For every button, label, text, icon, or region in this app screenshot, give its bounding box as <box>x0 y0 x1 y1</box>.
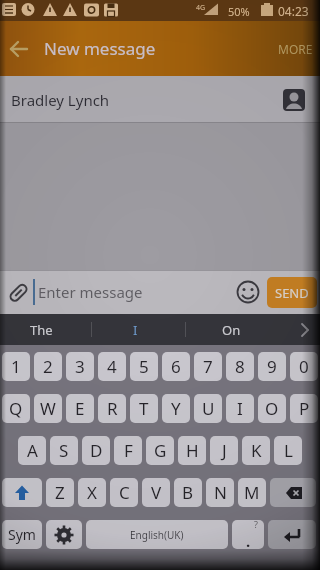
button[interactable]: I <box>133 321 138 339</box>
button[interactable]: U <box>194 394 222 423</box>
staticText: 8 <box>235 355 245 378</box>
button[interactable]: . <box>232 520 264 549</box>
staticText: X <box>87 481 97 504</box>
staticText: ? <box>254 520 258 530</box>
staticText: Bradley Lynch <box>11 90 110 110</box>
staticText: 50% <box>228 4 250 19</box>
button[interactable]: R <box>98 394 126 423</box>
staticText: P <box>299 397 310 420</box>
staticText: I <box>133 321 138 339</box>
button[interactable]: 5 <box>130 352 158 381</box>
button[interactable]: S <box>50 436 78 465</box>
button[interactable] <box>5 280 31 306</box>
staticText: 4 <box>107 355 117 378</box>
button[interactable]: Z <box>46 478 74 507</box>
staticText: F <box>124 439 133 462</box>
staticText: 04:23 <box>278 3 309 19</box>
button[interactable]: On <box>222 321 241 339</box>
button[interactable]: 7 <box>194 352 222 381</box>
staticText: L <box>284 439 293 462</box>
staticText: S <box>59 439 69 462</box>
button[interactable] <box>270 478 316 507</box>
button[interactable]: D <box>82 436 110 465</box>
staticText: I <box>237 397 243 420</box>
staticText: A <box>27 439 38 462</box>
button[interactable]: Q <box>2 394 30 423</box>
staticText: 9 <box>267 355 277 378</box>
button[interactable]: L <box>274 436 302 465</box>
button[interactable] <box>236 280 260 304</box>
staticText: B <box>182 481 194 504</box>
button[interactable]: F <box>114 436 142 465</box>
staticText: K <box>251 439 262 462</box>
staticText: D <box>90 439 103 462</box>
staticText: N <box>214 481 227 504</box>
button[interactable]: 9 <box>258 352 286 381</box>
staticText: M <box>244 481 260 504</box>
staticText: E <box>75 397 85 420</box>
staticText: W <box>40 397 56 420</box>
button[interactable]: C <box>110 478 138 507</box>
staticText: J <box>222 439 227 462</box>
button[interactable]: X <box>78 478 106 507</box>
button[interactable] <box>46 520 82 549</box>
button[interactable]: P <box>290 394 318 423</box>
button[interactable] <box>2 478 42 507</box>
staticText: R <box>107 397 118 420</box>
button[interactable]: Y <box>162 394 190 423</box>
staticText: MORE <box>278 41 313 57</box>
button[interactable]: Sym <box>2 520 42 549</box>
staticText: New message <box>44 37 156 60</box>
staticText: Y <box>171 397 181 420</box>
button[interactable]: 6 <box>162 352 190 381</box>
button[interactable]: Bradley Lynch <box>0 76 320 123</box>
staticText: The <box>30 321 53 339</box>
button[interactable]: J <box>210 436 238 465</box>
button[interactable]: H <box>178 436 206 465</box>
staticText: C <box>119 481 130 504</box>
button[interactable]: 1 <box>2 352 30 381</box>
button[interactable]: I <box>226 394 254 423</box>
button[interactable]: 3 <box>66 352 94 381</box>
staticText: 2 <box>43 355 53 378</box>
button[interactable]: K <box>242 436 270 465</box>
button[interactable]: 4 <box>98 352 126 381</box>
button[interactable]: N <box>206 478 234 507</box>
button[interactable]: B <box>174 478 202 507</box>
button[interactable] <box>8 32 42 66</box>
button[interactable]: Enter message <box>38 270 218 314</box>
button[interactable]: T <box>130 394 158 423</box>
staticText: 5 <box>139 355 149 378</box>
button[interactable]: V <box>142 478 170 507</box>
button[interactable]: G <box>146 436 174 465</box>
staticText: Z <box>55 481 65 504</box>
button[interactable] <box>295 320 315 340</box>
staticText: . <box>246 531 251 549</box>
staticText: 0 <box>299 355 309 378</box>
staticText: T <box>139 397 149 420</box>
button[interactable]: 0 <box>290 352 318 381</box>
staticText: 1 <box>11 355 21 378</box>
staticText: SEND <box>275 284 309 302</box>
staticText: G <box>154 439 167 462</box>
button[interactable]: 8 <box>226 352 254 381</box>
button[interactable] <box>283 89 305 111</box>
button[interactable]: M <box>238 478 266 507</box>
staticText: 6 <box>171 355 181 378</box>
button[interactable]: SEND <box>267 277 317 308</box>
staticText: U <box>202 397 215 420</box>
button[interactable]: 2 <box>34 352 62 381</box>
button[interactable]: O <box>258 394 286 423</box>
button[interactable]: A <box>18 436 46 465</box>
staticText: V <box>151 481 162 504</box>
staticText: 7 <box>203 355 213 378</box>
button[interactable]: W <box>34 394 62 423</box>
button[interactable]: The <box>30 321 53 339</box>
staticText: On <box>222 321 241 339</box>
staticText: 4G <box>196 3 206 13</box>
staticText: O <box>265 397 279 420</box>
button[interactable] <box>268 520 316 549</box>
button[interactable]: E <box>66 394 94 423</box>
button[interactable]: MORE <box>278 41 313 57</box>
button[interactable]: English(UK) <box>86 520 228 549</box>
